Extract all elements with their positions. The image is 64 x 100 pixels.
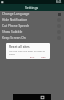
button[interactable]: Recents	[40, 95, 45, 100]
staticText: Cut Phone Speech	[2, 24, 30, 28]
staticText: NO	[30, 57, 35, 58]
button[interactable]: YES	[39, 56, 48, 59]
button[interactable]: Show Subtitle	[0, 29, 64, 35]
staticText: Hide Notification	[2, 18, 28, 22]
button[interactable]: Cut Phone Speech	[0, 23, 64, 29]
button[interactable]: Change Language	[0, 11, 64, 17]
staticText: Reset all sites	[9, 45, 30, 49]
button[interactable]: Hide Notification	[0, 17, 64, 23]
staticText: Show Subtitle	[2, 30, 23, 34]
button[interactable]: NO	[28, 56, 37, 59]
staticText: 8:45	[56, 0, 62, 4]
staticText: Change Language	[2, 12, 30, 16]
staticText: Are you sure you want to reset all sites…	[9, 50, 47, 56]
staticText: Keep Screen On	[2, 36, 26, 40]
staticText: YES	[41, 57, 46, 58]
staticText: Settings	[25, 5, 39, 10]
button[interactable]: Keep Screen On	[0, 35, 64, 41]
